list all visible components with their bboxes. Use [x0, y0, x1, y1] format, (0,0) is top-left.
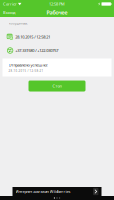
button[interactable]: Стоп — [28, 80, 85, 91]
staticText: Стоп — [52, 83, 61, 89]
staticText: Carrier — [3, 1, 17, 7]
staticText: Рабочее — [46, 9, 67, 16]
staticText: Интернет-магазин Wildberries — [15, 189, 70, 194]
staticText: 28.10.2015 / 12:58:21 — [8, 69, 43, 73]
button[interactable]: Интернет-магазин Wildberries — [12, 187, 101, 200]
staticText: 12:58 PM — [49, 1, 65, 7]
staticText: Координаты: — [9, 22, 28, 25]
staticText: +37.331580 / +122.030757 — [15, 48, 58, 53]
staticText: Выход — [3, 10, 15, 15]
staticText: 28.10.2015 / 12:58:21 — [15, 34, 50, 40]
button[interactable]: Выход — [0, 8, 18, 17]
staticText: Отправлено успешно! — [8, 62, 47, 68]
